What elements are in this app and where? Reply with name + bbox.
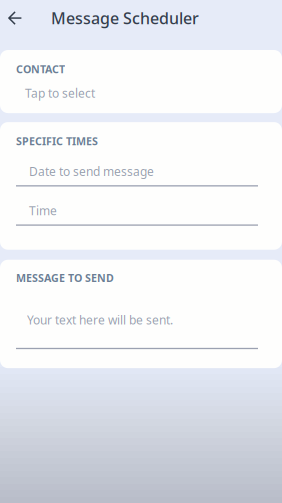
button[interactable]: Tap to select (0, 76, 282, 113)
button[interactable]: Your text here will be sent. (0, 285, 258, 349)
staticText: Your text here will be sent. (27, 312, 173, 328)
staticText: CONTACT (16, 62, 65, 76)
button[interactable]: Time (0, 186, 258, 226)
staticText: Message Scheduler (51, 7, 199, 29)
button[interactable]: Back (7, 0, 51, 43)
staticText: Time (29, 202, 57, 218)
button[interactable]: Date to send message (0, 148, 258, 186)
staticText: MESSAGE TO SEND (16, 271, 114, 285)
staticText: Date to send message (29, 163, 154, 179)
staticText: Tap to select (25, 85, 95, 101)
staticText: SPECIFIC TIMES (16, 134, 98, 148)
